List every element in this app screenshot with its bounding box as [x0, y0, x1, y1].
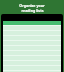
- staticText: Organize your: [19, 3, 45, 8]
- staticText: reading lists: [21, 8, 44, 13]
